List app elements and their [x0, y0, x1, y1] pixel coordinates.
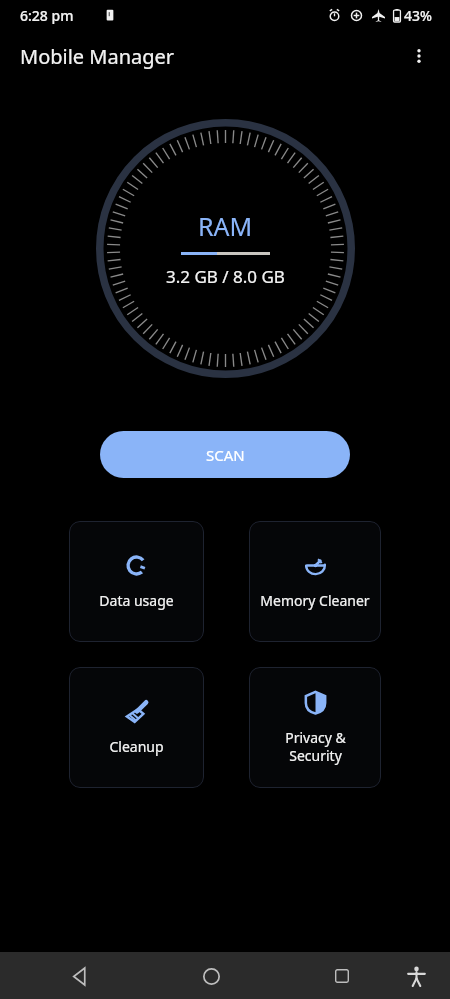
button[interactable]: More options	[398, 35, 440, 77]
button[interactable]: Data usage	[69, 521, 204, 642]
button[interactable]: Home	[189, 954, 233, 998]
button[interactable]: SCAN	[100, 431, 350, 478]
staticText: Data usage	[99, 591, 174, 610]
staticText: 3.2 GB / 8.0 GB	[166, 265, 285, 288]
button[interactable]: Back	[58, 954, 102, 998]
staticText: RAM	[198, 209, 253, 243]
button[interactable]: Accessibility	[394, 954, 438, 998]
button[interactable]: Recent apps	[320, 954, 364, 998]
staticText: Privacy & Security	[285, 728, 346, 765]
staticText: Cleanup	[109, 737, 164, 756]
staticText: 43%	[404, 6, 432, 25]
staticText: 6:28 pm	[20, 6, 74, 25]
button[interactable]: Memory Cleaner	[249, 521, 381, 642]
button[interactable]: Cleanup	[69, 667, 204, 788]
staticText: SCAN	[206, 445, 245, 465]
staticText: Memory Cleaner	[260, 591, 370, 610]
button[interactable]: Privacy & Security	[249, 667, 381, 788]
staticText: Mobile Manager	[20, 43, 175, 70]
